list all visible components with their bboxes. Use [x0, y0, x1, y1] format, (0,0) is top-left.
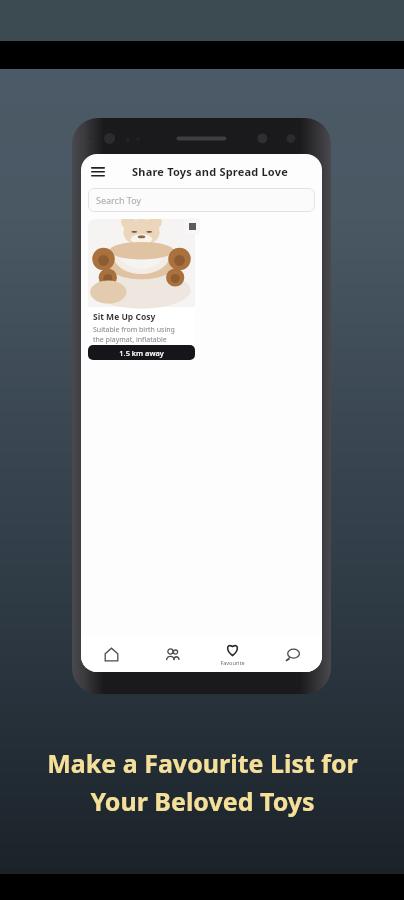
button[interactable]: Favourite	[202, 636, 262, 672]
button[interactable]: Chat	[262, 636, 322, 672]
staticText: Sit Me Up Cosy	[93, 311, 156, 323]
button[interactable]: Search Toy	[88, 188, 315, 212]
staticText: Suitable from birth using	[93, 325, 175, 335]
staticText: Favourite	[220, 659, 245, 666]
button[interactable]: Favourite	[184, 218, 200, 234]
button[interactable]: Community	[142, 636, 202, 672]
staticText: the playmat, inflatable	[93, 335, 167, 345]
staticText: Search Toy	[96, 194, 142, 206]
staticText: Make a Favourite List for	[47, 746, 358, 780]
staticText: Your Beloved Toys	[90, 784, 315, 818]
button[interactable]: 1.5 km away	[88, 345, 195, 360]
button[interactable]: Menu	[87, 160, 109, 182]
staticText: Share Toys and Spread Love	[132, 164, 288, 179]
button[interactable]: Sit Me Up Cosy	[88, 219, 195, 349]
staticText: 1.5 km away	[119, 348, 164, 358]
button[interactable]: Home	[81, 636, 142, 672]
